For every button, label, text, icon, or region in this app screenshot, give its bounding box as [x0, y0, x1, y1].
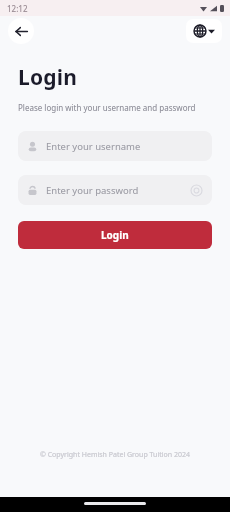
button[interactable]: Back — [8, 18, 34, 44]
staticText: Enter your password — [46, 184, 189, 197]
staticText: Enter your username — [46, 140, 141, 153]
staticText: Please login with your username and pass… — [18, 102, 196, 113]
button[interactable]: Login — [18, 221, 212, 249]
button[interactable]: Enter your password — [18, 175, 212, 205]
button[interactable]: Show password — [189, 183, 203, 197]
staticText: Login — [18, 63, 78, 92]
staticText: 12:12 — [7, 3, 28, 14]
button[interactable]: Enter your username — [18, 131, 212, 161]
button[interactable]: Change language — [186, 19, 222, 43]
staticText: © Copyright Hemish Patel Group Tuition 2… — [12, 450, 218, 460]
staticText: Login — [101, 228, 129, 242]
